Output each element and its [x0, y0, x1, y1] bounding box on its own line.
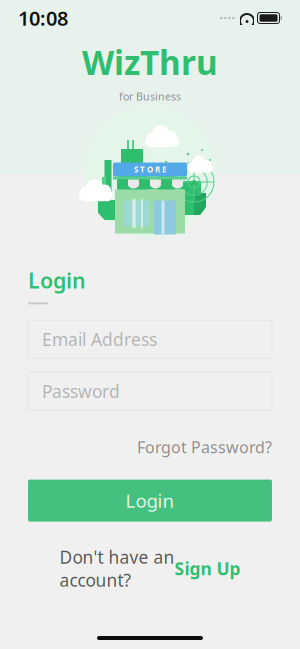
staticText: 10:08 [18, 5, 68, 31]
button[interactable]: Login [28, 480, 272, 522]
staticText: Login [125, 488, 174, 513]
button[interactable]: Email Address [28, 320, 272, 358]
staticText: Password [42, 380, 120, 403]
button[interactable]: Sign Up [174, 557, 240, 580]
staticText: Forgot Password? [137, 436, 272, 457]
button[interactable]: Password [28, 372, 272, 410]
staticText: S T O R E [134, 164, 166, 175]
staticText: Sign Up [174, 557, 240, 580]
button[interactable]: Forgot Password? [137, 436, 272, 457]
staticText: Email Address [42, 328, 157, 351]
staticText: Don't have an account? [59, 546, 174, 592]
staticText: WizThru [82, 40, 218, 84]
staticText: for Business [119, 89, 181, 103]
staticText: Login [28, 266, 86, 294]
